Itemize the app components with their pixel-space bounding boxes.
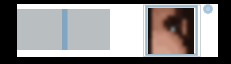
button[interactable] xyxy=(0,0,231,64)
